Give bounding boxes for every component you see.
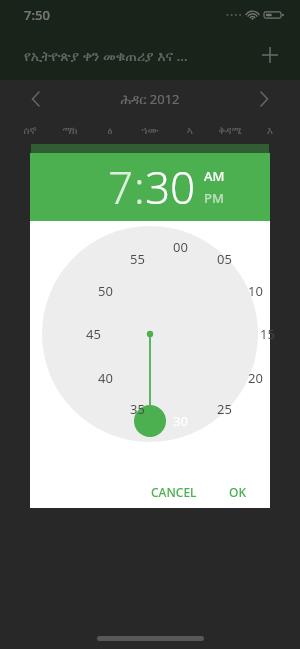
staticText: : [134, 157, 145, 217]
staticText: 55 [130, 250, 145, 268]
staticText: 00 [173, 238, 188, 256]
staticText: ሕዳር 2012 [50, 90, 250, 108]
button[interactable]: Previous month [22, 85, 50, 113]
staticText: ኀሙ [130, 126, 170, 136]
staticText: 30 [173, 412, 188, 430]
button[interactable]: PM [204, 189, 224, 207]
staticText: 20 [248, 369, 263, 387]
staticText: 15 [260, 325, 275, 343]
staticText: 35 [130, 400, 145, 418]
staticText: 25 [217, 400, 232, 418]
staticText: ማክ [50, 126, 90, 136]
staticText: የኢትዮጵያ ቀን መቁጠሪያ እና … [24, 46, 188, 65]
staticText: ቅዳሜ [210, 126, 250, 136]
staticText: 05 [217, 250, 232, 268]
staticText: CANCEL [151, 484, 197, 500]
staticText: 7:50 [24, 6, 50, 24]
button[interactable]: Add [252, 37, 288, 73]
staticText: ኣ [170, 126, 210, 136]
button[interactable]: Minute selector clock [30, 221, 270, 476]
staticText: 40 [98, 369, 113, 387]
staticText: 10 [248, 282, 263, 300]
staticText: ዕ [90, 126, 130, 136]
staticText: 50 [98, 282, 113, 300]
staticText: እ [250, 126, 290, 136]
button[interactable]: Next month [250, 85, 278, 113]
button[interactable]: 7 [108, 157, 134, 217]
staticText: ሰኞ [10, 126, 50, 136]
button[interactable]: 30 [145, 157, 196, 217]
button[interactable]: CANCEL [143, 478, 205, 506]
staticText: 45 [86, 325, 101, 343]
button[interactable]: AM [204, 167, 225, 185]
staticText: OK [229, 484, 246, 500]
button[interactable]: OK [221, 478, 254, 506]
